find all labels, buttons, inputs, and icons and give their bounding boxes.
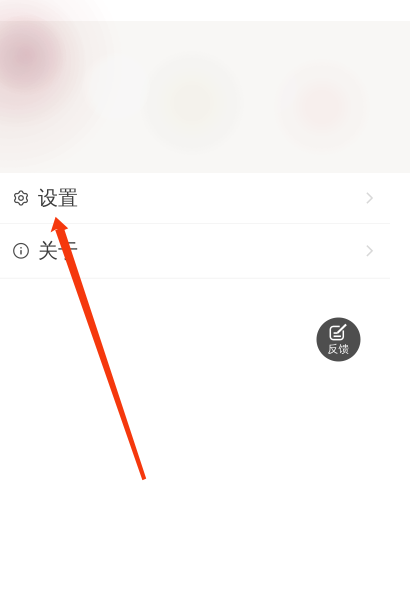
staticText: 关于	[38, 238, 78, 263]
button[interactable]: 设置	[0, 173, 410, 223]
staticText: 反馈	[327, 342, 349, 355]
staticText: 设置	[38, 186, 78, 210]
button[interactable]: 反馈	[316, 317, 360, 361]
button[interactable]: 关于	[0, 224, 410, 278]
